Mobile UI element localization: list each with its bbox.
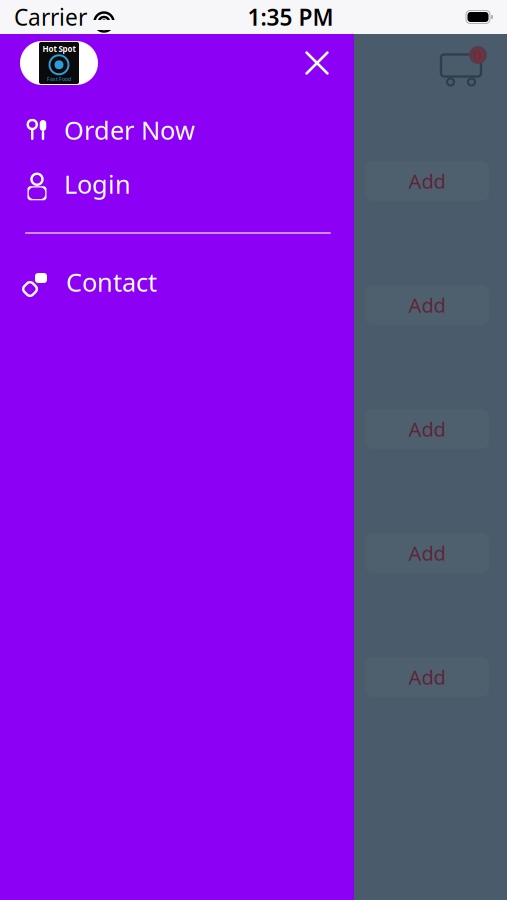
staticText: Hot Spot	[42, 44, 75, 54]
staticText: 1:35 PM	[247, 2, 333, 32]
staticText: Add	[408, 292, 445, 318]
staticText: Add	[408, 168, 445, 194]
button[interactable]: Close menu	[294, 40, 340, 86]
staticText: Carrier	[14, 2, 87, 32]
staticText: Add	[408, 416, 445, 442]
staticText: Order Now	[64, 113, 195, 147]
staticText: Login	[64, 167, 131, 201]
staticText: Add	[408, 540, 445, 566]
staticText: 0	[474, 45, 482, 65]
staticText: Contact	[66, 265, 157, 299]
staticText: Add	[408, 664, 445, 690]
button[interactable]: Login	[0, 162, 354, 206]
button[interactable]: Order Now	[0, 108, 354, 152]
staticText: Fast Food	[47, 75, 71, 82]
button[interactable]: Contact	[0, 260, 354, 304]
